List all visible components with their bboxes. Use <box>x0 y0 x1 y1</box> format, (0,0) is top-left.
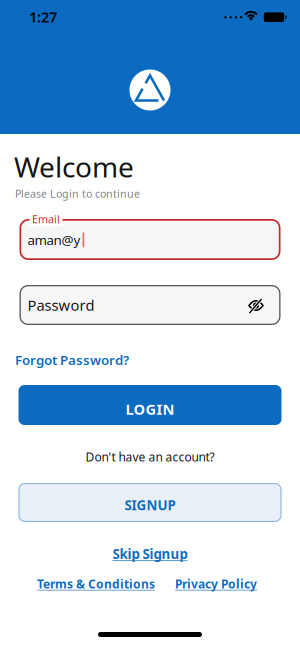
button[interactable]: SIGNUP <box>18 483 281 522</box>
staticText: 1:27 <box>29 7 57 26</box>
button[interactable]: Show password <box>244 293 268 317</box>
staticText: aman@y <box>27 231 80 249</box>
button[interactable]: LOGIN <box>18 385 281 425</box>
staticText: Password <box>27 295 94 315</box>
staticText: Forgot Password? <box>15 351 129 369</box>
button[interactable]: Terms & Conditions <box>37 576 155 592</box>
button[interactable]: aman@y <box>19 219 280 260</box>
staticText: Please Login to continue <box>15 186 140 201</box>
button[interactable]: Skip Signup <box>112 545 187 563</box>
staticText: Privacy Policy <box>175 576 257 592</box>
staticText: Terms & Conditions <box>37 576 155 592</box>
staticText: Don't have an account? <box>85 449 214 465</box>
staticText: Welcome <box>14 148 134 185</box>
staticText: Email <box>32 212 60 226</box>
staticText: LOGIN <box>125 399 174 419</box>
button[interactable]: Forgot Password? <box>15 351 129 369</box>
button[interactable]: Privacy Policy <box>175 576 257 592</box>
staticText: SIGNUP <box>124 496 175 514</box>
button[interactable]: Password <box>19 285 280 325</box>
staticText: Skip Signup <box>112 545 187 563</box>
